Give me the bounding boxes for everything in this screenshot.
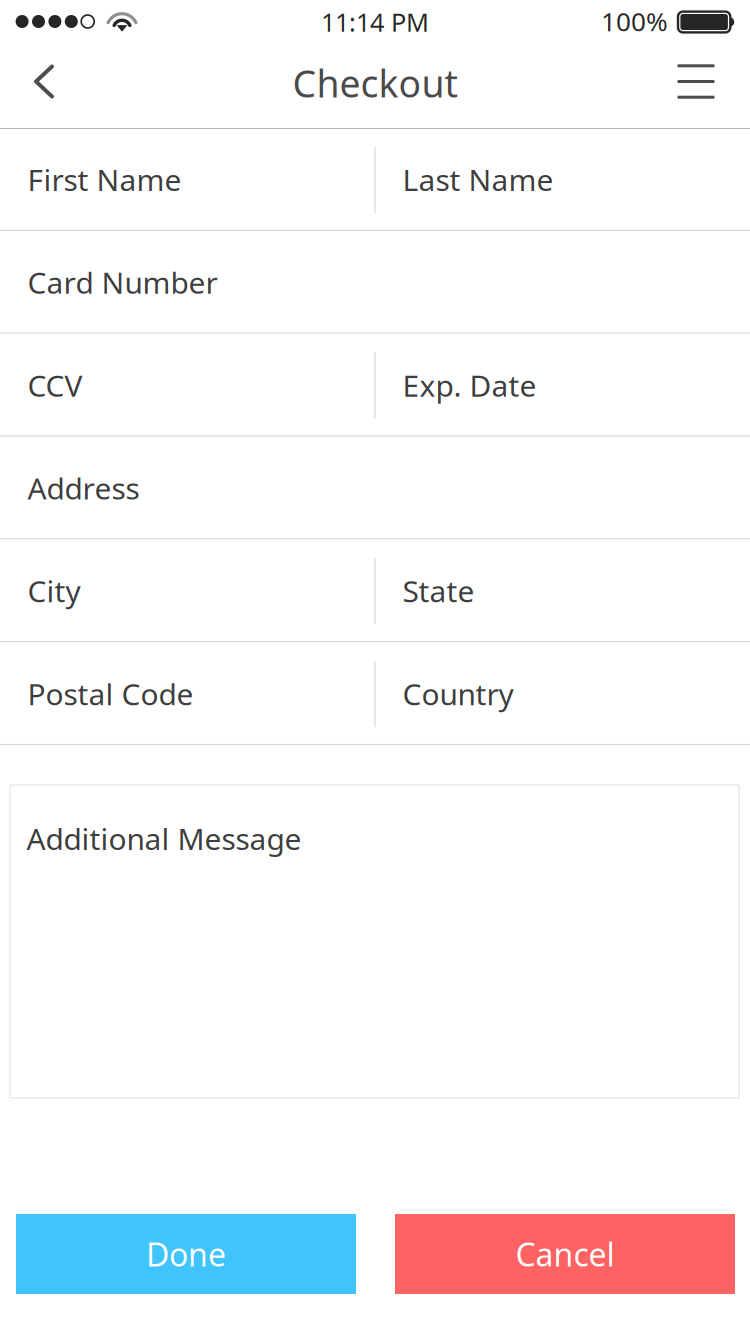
staticText: Done [146, 1232, 226, 1276]
staticText: City [27, 570, 80, 611]
staticText: CCV [27, 365, 82, 405]
button[interactable]: Country [375, 642, 750, 745]
button[interactable]: City [0, 539, 375, 642]
staticText: State [402, 570, 474, 611]
button[interactable]: Additional Message [10, 785, 739, 1098]
staticText: Additional Message [26, 818, 301, 859]
button[interactable]: Exp. Date [375, 334, 750, 436]
button[interactable]: State [375, 539, 750, 642]
button[interactable]: Last Name [375, 128, 750, 231]
button[interactable]: First Name [0, 128, 375, 231]
staticText: Card Number [27, 262, 217, 303]
staticText: First Name [27, 159, 181, 200]
button[interactable]: Menu [663, 46, 729, 116]
staticText: Address [27, 468, 139, 508]
button[interactable]: Postal Code [0, 642, 375, 745]
staticText: Country [402, 673, 513, 714]
button[interactable]: Cancel [395, 1214, 735, 1294]
staticText: Exp. Date [402, 365, 536, 405]
staticText: Last Name [402, 159, 553, 200]
button[interactable]: Card Number [0, 231, 750, 334]
button[interactable]: Address [0, 436, 750, 539]
button[interactable]: Back [11, 46, 77, 116]
button[interactable]: CCV [0, 334, 375, 436]
staticText: 100% [601, 3, 668, 39]
button[interactable]: Done [16, 1214, 356, 1294]
staticText: Cancel [515, 1232, 614, 1276]
staticText: 11:14 PM [321, 5, 429, 39]
staticText: Checkout [292, 58, 457, 108]
staticText: Postal Code [27, 673, 193, 714]
